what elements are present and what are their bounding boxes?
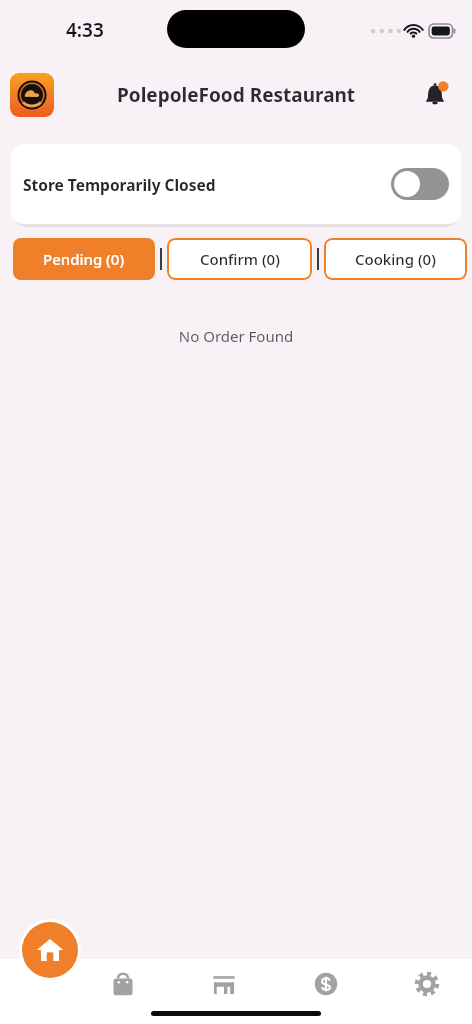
staticText: Pending (0) [43,249,125,269]
staticText: No Order Found [0,326,472,346]
button[interactable]: Store Temporarily Closed [11,144,461,224]
staticText: Confirm (0) [200,249,280,269]
button[interactable]: Store closed toggle [391,168,449,200]
button[interactable]: Confirm (0) [167,238,312,280]
button[interactable]: Store [201,961,247,1007]
button[interactable]: Restaurant logo [10,73,54,117]
staticText: Store Temporarily Closed [23,174,216,195]
button[interactable]: Pending (0) [13,238,155,280]
button[interactable]: Orders [100,961,146,1007]
staticText: 4:33 [66,17,104,43]
button[interactable]: Notifications [418,78,452,112]
button[interactable]: Home [22,922,78,978]
staticText: PolepoleFood Restaurant [117,82,356,108]
staticText: Cooking (0) [355,249,436,269]
button[interactable]: Settings [404,961,450,1007]
button[interactable]: Cooking (0) [324,238,467,280]
button[interactable]: Earnings [303,961,349,1007]
